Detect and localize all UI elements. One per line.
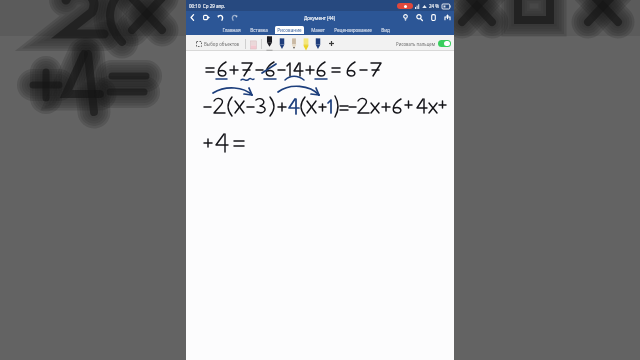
button[interactable]: Вставка	[248, 26, 270, 34]
staticText: Вставка	[250, 27, 268, 33]
button[interactable]: Макет	[309, 26, 327, 34]
staticText: Макет	[311, 27, 325, 33]
button[interactable]: Tell me	[401, 13, 410, 22]
button[interactable]: Pen	[290, 36, 298, 51]
button[interactable]: Рисование	[275, 26, 304, 34]
button[interactable]: Device	[429, 13, 438, 22]
button[interactable]: Redo	[230, 13, 239, 22]
button[interactable]: Pen	[302, 36, 310, 51]
button[interactable]: Add pen	[327, 39, 336, 48]
staticText: Рисование	[277, 27, 302, 33]
button[interactable]: Present	[202, 13, 211, 22]
button[interactable]: Главная	[220, 26, 243, 34]
staticText: Выбор объектов	[204, 41, 239, 47]
staticText: Главная	[222, 27, 241, 33]
button[interactable]: Рецензирование	[332, 26, 374, 34]
staticText: Документ (44)	[304, 15, 336, 21]
button[interactable]: Pen	[278, 36, 286, 51]
button[interactable]: Undo	[216, 13, 225, 22]
staticText: Вид	[381, 27, 390, 33]
button[interactable]: Вид	[379, 26, 392, 34]
staticText: 00:10 Ср 29 апр.	[189, 3, 226, 9]
button[interactable]: Eraser	[250, 37, 257, 51]
button[interactable]: Share	[443, 13, 452, 22]
button[interactable]: Pen	[265, 36, 274, 51]
staticText: Рецензирование	[334, 27, 372, 33]
button[interactable]: Рисовать пальцем	[396, 40, 451, 47]
staticText: 24 %	[429, 3, 440, 9]
button[interactable]: Back	[188, 13, 197, 22]
button[interactable]: Выбор объектов	[195, 40, 240, 48]
button[interactable]: Search	[415, 13, 424, 22]
button[interactable]: Pen	[314, 36, 322, 51]
staticText: Рисовать пальцем	[396, 41, 436, 47]
